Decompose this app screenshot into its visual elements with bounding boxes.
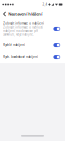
staticText: Zobrazit informace o rychlosti nabíjení … <box>3 26 43 36</box>
staticText: 2,4 <box>42 3 47 6</box>
staticText: Zobrazit informace o nabíjení <box>3 22 44 25</box>
button[interactable]: Zobrazit informace o nabíjení <box>0 19 65 39</box>
button[interactable]: Rych. bezdrátové nabíjení <box>0 51 65 63</box>
staticText: Nastavení hlášení <box>8 11 42 17</box>
staticText: Rych. bezdrátové nabíjení <box>3 55 38 59</box>
button[interactable]: Rychlé nabíjení <box>0 39 65 51</box>
button[interactable]: Back <box>0 9 8 19</box>
staticText: Rychlé nabíjení <box>3 43 25 47</box>
